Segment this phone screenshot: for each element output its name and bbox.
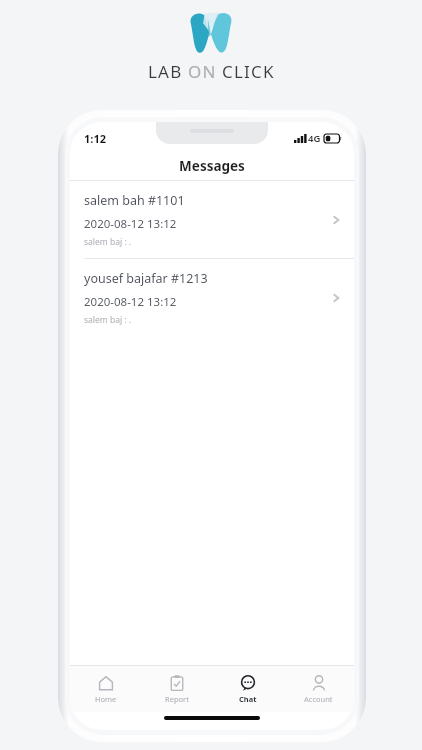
staticText: 1:12: [84, 131, 106, 146]
staticText: CLICK: [222, 60, 275, 83]
staticText: 2020-08-12 13:12: [84, 294, 177, 310]
button[interactable]: Chat: [212, 666, 283, 712]
staticText: yousef bajafar #1213: [84, 270, 208, 287]
button[interactable]: salem bah #1101: [70, 181, 354, 258]
staticText: Report: [165, 694, 189, 704]
button[interactable]: yousef bajafar #1213: [70, 259, 354, 336]
button[interactable]: Account: [283, 666, 354, 712]
staticText: salem bah #1101: [84, 192, 185, 209]
staticText: salem baj : .: [84, 236, 132, 248]
staticText: 4G: [308, 132, 321, 145]
staticText: Chat: [239, 694, 257, 704]
staticText: ON: [188, 60, 217, 83]
button[interactable]: Home: [70, 666, 141, 712]
staticText: Messages: [179, 157, 245, 175]
staticText: salem baj : .: [84, 314, 132, 326]
button[interactable]: Report: [141, 666, 212, 712]
staticText: Account: [304, 694, 333, 704]
staticText: LAB: [148, 60, 183, 83]
staticText: 2020-08-12 13:12: [84, 216, 177, 232]
staticText: Home: [95, 694, 117, 704]
